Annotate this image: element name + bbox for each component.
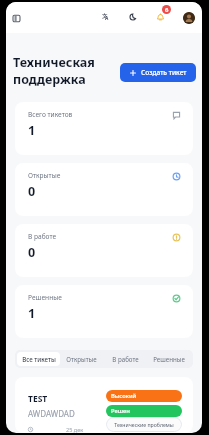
staticText: Техническая bbox=[13, 54, 95, 71]
staticText: Создать тикет bbox=[141, 68, 187, 77]
button[interactable]: Dark mode bbox=[125, 10, 141, 26]
staticText: Открытые bbox=[28, 171, 61, 180]
staticText: В работе bbox=[28, 232, 57, 241]
button[interactable]: Translate language bbox=[98, 11, 112, 25]
staticText: 1 bbox=[28, 305, 36, 322]
button[interactable]: Всего тикетов bbox=[15, 102, 193, 155]
staticText: 1 bbox=[28, 122, 36, 139]
staticText: TEST bbox=[28, 393, 48, 405]
staticText: Технические проблемы bbox=[114, 421, 174, 428]
staticText: 文 bbox=[102, 13, 108, 20]
staticText: поддержка bbox=[13, 71, 86, 88]
staticText: Решенные bbox=[153, 355, 185, 363]
button[interactable]: Открытые bbox=[60, 352, 103, 366]
staticText: 0 bbox=[28, 183, 36, 200]
button[interactable]: Toggle sidebar bbox=[9, 11, 23, 25]
button[interactable]: Решенные bbox=[147, 352, 191, 366]
staticText: 6 bbox=[165, 6, 169, 14]
staticText: Всего тикетов bbox=[28, 110, 73, 119]
staticText: Решенные bbox=[28, 293, 62, 302]
button[interactable]: Открытые bbox=[15, 163, 193, 216]
staticText: 0 bbox=[28, 244, 36, 261]
button[interactable]: Все тикеты bbox=[17, 352, 60, 366]
button[interactable]: Notifications bbox=[157, 5, 173, 31]
button[interactable]: В работе bbox=[15, 224, 193, 277]
button[interactable]: Profile bbox=[183, 12, 195, 24]
button[interactable]: Создать тикет bbox=[120, 63, 196, 82]
staticText: 25 дек bbox=[66, 426, 84, 433]
staticText: Все тикеты bbox=[22, 355, 56, 363]
staticText: A bbox=[105, 15, 109, 22]
button[interactable]: TEST bbox=[15, 377, 193, 433]
staticText: В работе bbox=[112, 355, 139, 363]
staticText: Высокий bbox=[111, 392, 137, 400]
button[interactable]: Решенные bbox=[15, 285, 193, 338]
staticText: Решен bbox=[111, 407, 130, 415]
staticText: Открытые bbox=[66, 355, 97, 363]
staticText: AWDAWDAD bbox=[28, 408, 75, 419]
button[interactable]: В работе bbox=[103, 352, 147, 366]
